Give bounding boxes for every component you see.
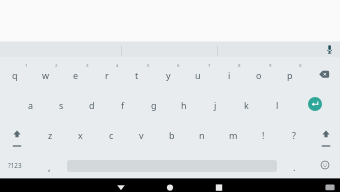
button[interactable] bbox=[113, 179, 129, 192]
staticText: t bbox=[135, 69, 139, 81]
staticText: n bbox=[199, 129, 205, 141]
button[interactable]: ! bbox=[249, 124, 277, 146]
button[interactable]: . bbox=[280, 156, 308, 178]
staticText: y bbox=[166, 69, 171, 81]
button[interactable]: e bbox=[62, 64, 90, 86]
staticText: 2 bbox=[55, 62, 58, 68]
staticText: j bbox=[214, 99, 217, 111]
button[interactable] bbox=[211, 179, 227, 192]
staticText: w bbox=[42, 69, 50, 81]
staticText: u bbox=[195, 69, 201, 81]
staticText: 0 bbox=[299, 62, 302, 68]
button[interactable]: m bbox=[219, 124, 247, 146]
button[interactable]: p bbox=[276, 64, 304, 86]
staticText: , bbox=[48, 161, 51, 174]
staticText: e bbox=[73, 69, 79, 81]
staticText: ? bbox=[292, 129, 296, 141]
button[interactable]: y bbox=[154, 64, 182, 86]
button[interactable]: g bbox=[140, 94, 168, 116]
button[interactable]: ? bbox=[280, 124, 308, 146]
staticText: ! bbox=[262, 129, 265, 141]
staticText: v bbox=[139, 129, 144, 141]
button[interactable]: j bbox=[201, 94, 229, 116]
button[interactable]: x bbox=[66, 124, 94, 146]
button[interactable]: b bbox=[158, 124, 186, 146]
staticText: z bbox=[48, 129, 53, 141]
staticText: h bbox=[181, 99, 187, 111]
button[interactable]: a bbox=[17, 94, 45, 116]
staticText: 5 bbox=[147, 62, 150, 68]
staticText: b bbox=[169, 129, 175, 141]
staticText: c bbox=[109, 129, 114, 141]
button[interactable]: v bbox=[127, 124, 155, 146]
staticText: l bbox=[276, 99, 279, 111]
staticText: o bbox=[256, 69, 262, 81]
button[interactable]: r bbox=[93, 64, 121, 86]
button[interactable]: w bbox=[32, 64, 60, 86]
button[interactable]: f bbox=[109, 94, 137, 116]
button[interactable]: c bbox=[97, 124, 125, 146]
button[interactable]: z bbox=[36, 124, 64, 146]
button[interactable]: k bbox=[232, 94, 260, 116]
button[interactable]: t bbox=[123, 64, 151, 86]
button[interactable] bbox=[316, 125, 336, 149]
staticText: 7 bbox=[208, 62, 211, 68]
button[interactable]: u bbox=[184, 64, 212, 86]
button[interactable]: i bbox=[215, 64, 243, 86]
button[interactable] bbox=[308, 97, 322, 111]
staticText: . bbox=[293, 161, 296, 174]
button[interactable]: l bbox=[263, 94, 291, 116]
staticText: ?123 bbox=[8, 161, 22, 170]
staticText: r bbox=[105, 69, 109, 81]
staticText: i bbox=[228, 69, 231, 81]
button[interactable]: n bbox=[188, 124, 216, 146]
button[interactable]: s bbox=[47, 94, 75, 116]
button[interactable] bbox=[322, 179, 338, 192]
staticText: d bbox=[89, 99, 95, 111]
staticText: s bbox=[59, 99, 64, 111]
button[interactable] bbox=[310, 64, 338, 86]
staticText: g bbox=[151, 99, 157, 111]
staticText: 8 bbox=[238, 62, 241, 68]
button[interactable] bbox=[321, 42, 338, 57]
staticText: k bbox=[244, 99, 249, 111]
staticText: 6 bbox=[177, 62, 180, 68]
staticText: 4 bbox=[116, 62, 119, 68]
button[interactable]: d bbox=[78, 94, 106, 116]
staticText: f bbox=[121, 99, 125, 111]
button[interactable]: ?123 bbox=[1, 154, 29, 176]
button[interactable]: h bbox=[170, 94, 198, 116]
staticText: a bbox=[28, 99, 34, 111]
button[interactable]: o bbox=[245, 64, 273, 86]
staticText: 3 bbox=[86, 62, 89, 68]
button[interactable]: q bbox=[1, 64, 29, 86]
button[interactable] bbox=[7, 125, 27, 149]
staticText: x bbox=[78, 129, 83, 141]
button[interactable] bbox=[162, 179, 178, 192]
button[interactable]: , bbox=[35, 156, 63, 178]
staticText: p bbox=[287, 69, 293, 81]
staticText: q bbox=[12, 69, 18, 81]
button[interactable] bbox=[317, 157, 333, 173]
staticText: 9 bbox=[269, 62, 272, 68]
staticText: m bbox=[229, 129, 238, 141]
staticText: 1 bbox=[25, 62, 28, 68]
